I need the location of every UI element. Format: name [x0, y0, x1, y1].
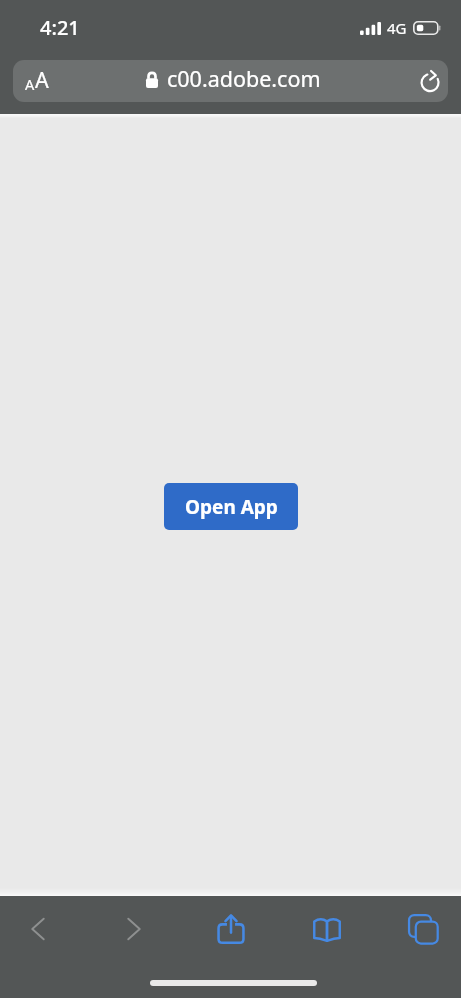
button[interactable]: Text size options	[25, 60, 49, 102]
staticText: c00.adobe.com	[167, 64, 321, 93]
button[interactable]: Open App	[164, 483, 298, 530]
button[interactable]: c00.adobe.com	[13, 60, 448, 102]
button[interactable]: Tabs	[399, 896, 447, 962]
button[interactable]: Reload	[419, 60, 442, 102]
staticText: A	[25, 74, 35, 94]
button[interactable]: Forward	[110, 896, 158, 962]
button[interactable]: Share	[207, 896, 255, 962]
button[interactable]: Bookmarks	[303, 896, 351, 962]
staticText: 4:21	[40, 14, 80, 41]
staticText: 4G	[387, 18, 407, 38]
button[interactable]: Back	[14, 896, 62, 962]
staticText: Open App	[185, 494, 278, 520]
staticText: A	[35, 65, 49, 94]
